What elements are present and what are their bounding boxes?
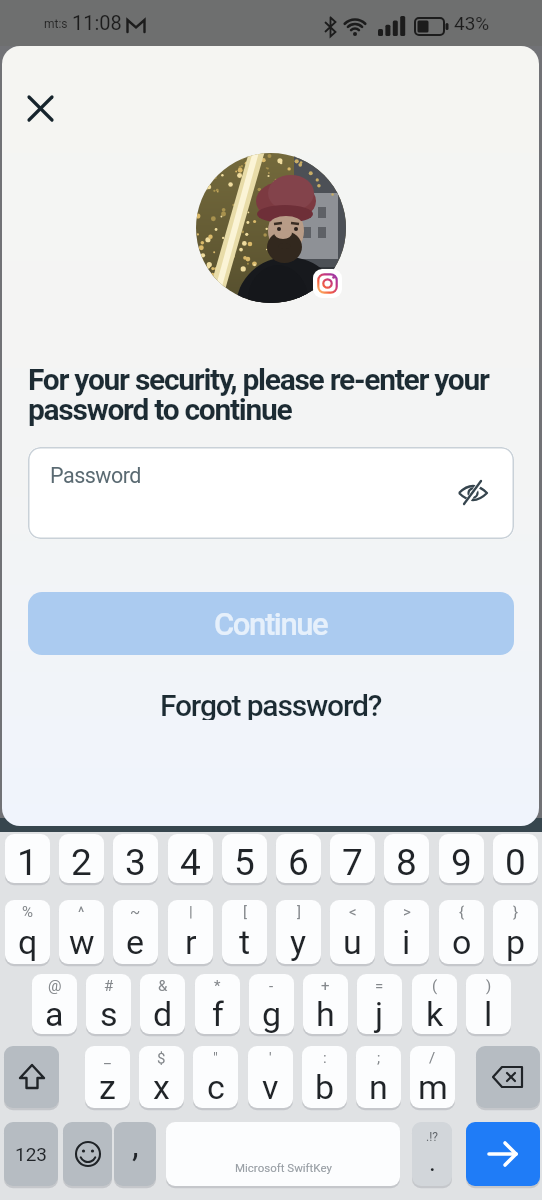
staticText: 9 — [451, 841, 472, 883]
button[interactable]: / — [410, 1046, 455, 1108]
staticText: ; — [377, 1049, 381, 1067]
staticText: e — [126, 922, 145, 962]
button[interactable]: $ — [139, 1046, 184, 1108]
staticText: * — [214, 977, 221, 995]
staticText: - — [269, 977, 274, 995]
button[interactable]: @ — [32, 974, 77, 1034]
button[interactable]: 5 — [222, 834, 267, 883]
staticText: % — [22, 903, 33, 921]
staticText: z — [99, 1067, 116, 1107]
button[interactable]: ' — [248, 1046, 293, 1108]
button[interactable]: : — [302, 1046, 347, 1108]
staticText: 7 — [342, 841, 363, 883]
button[interactable]: 6 — [276, 834, 321, 883]
button[interactable]: ] — [276, 900, 321, 964]
button[interactable]: 1 — [5, 834, 50, 883]
staticText: ) — [486, 977, 492, 995]
button[interactable]: ) — [466, 974, 511, 1034]
button[interactable] — [63, 1122, 112, 1186]
staticText: c — [207, 1067, 225, 1107]
button[interactable]: + — [303, 974, 348, 1034]
button[interactable]: { — [439, 900, 484, 964]
staticText: } — [513, 903, 519, 921]
staticText: 11:08 — [72, 11, 122, 34]
button[interactable]: .!? — [412, 1122, 452, 1186]
button[interactable] — [466, 1122, 540, 1186]
button[interactable]: Microsoft SwiftKey — [166, 1122, 400, 1186]
staticText: 4 — [180, 841, 201, 883]
button[interactable]: 4 — [168, 834, 213, 883]
staticText: l — [484, 994, 493, 1034]
button[interactable] — [22, 90, 59, 127]
staticText: q — [18, 922, 38, 962]
staticText: y — [290, 922, 307, 962]
button[interactable] — [450, 447, 514, 539]
button[interactable]: 123 — [4, 1122, 58, 1186]
staticText: ( — [432, 977, 438, 995]
staticText: i — [402, 922, 411, 962]
button[interactable]: ; — [356, 1046, 401, 1108]
staticText: 5 — [234, 841, 255, 883]
button[interactable]: " — [193, 1046, 238, 1108]
button[interactable]: , — [114, 1122, 156, 1186]
button[interactable]: ^ — [59, 900, 104, 964]
staticText: b — [315, 1067, 335, 1107]
button[interactable]: * — [195, 974, 240, 1034]
staticText: x — [153, 1067, 170, 1107]
staticText: o — [452, 922, 472, 962]
button[interactable]: - — [249, 974, 294, 1034]
staticText: t — [239, 922, 251, 962]
button[interactable]: Forgot password? — [0, 688, 542, 720]
button[interactable]: 0 — [493, 834, 538, 883]
button[interactable]: 7 — [330, 834, 375, 883]
staticText: p — [506, 922, 526, 962]
button[interactable]: | — [168, 900, 213, 964]
button[interactable]: ~ — [113, 900, 158, 964]
button[interactable]: Password — [28, 447, 514, 539]
staticText: ] — [297, 903, 301, 921]
staticText: Forgot password? — [160, 688, 382, 720]
staticText: u — [343, 922, 362, 962]
button[interactable]: % — [5, 900, 50, 964]
button[interactable] — [476, 1046, 540, 1108]
button[interactable]: 3 — [113, 834, 158, 883]
button[interactable]: < — [330, 900, 375, 964]
staticText: h — [316, 994, 335, 1034]
staticText: f — [212, 994, 224, 1034]
button[interactable] — [4, 1046, 59, 1108]
staticText: < — [349, 903, 357, 921]
button[interactable]: 9 — [439, 834, 484, 883]
staticText: m — [418, 1067, 448, 1107]
staticText: ~ — [130, 903, 141, 921]
staticText: [ — [243, 903, 247, 921]
button[interactable]: _ — [85, 1046, 130, 1108]
staticText: { — [459, 903, 465, 921]
button[interactable]: } — [493, 900, 538, 964]
staticText: @ — [48, 977, 62, 995]
button[interactable]: ( — [412, 974, 457, 1034]
button[interactable]: = — [357, 974, 402, 1034]
staticText: n — [369, 1067, 388, 1107]
button[interactable]: 8 — [384, 834, 429, 883]
staticText: s — [100, 994, 118, 1034]
button[interactable]: Continue — [28, 592, 514, 655]
staticText: r — [185, 922, 197, 962]
button[interactable]: # — [86, 974, 131, 1034]
staticText: # — [104, 977, 114, 995]
staticText: 3 — [125, 841, 146, 883]
staticText: 1 — [17, 841, 38, 883]
staticText: ^ — [78, 903, 85, 921]
staticText: v — [262, 1067, 279, 1107]
staticText: ' — [269, 1049, 272, 1067]
button[interactable]: [ — [222, 900, 267, 964]
staticText: : — [323, 1049, 327, 1067]
staticText: 6 — [288, 841, 309, 883]
button[interactable]: & — [140, 974, 185, 1034]
button[interactable]: 2 — [59, 834, 104, 883]
staticText: . — [429, 1147, 436, 1177]
staticText: _ — [104, 1049, 111, 1067]
button[interactable]: > — [384, 900, 429, 964]
staticText: , — [132, 1125, 139, 1165]
staticText: / — [429, 1049, 436, 1067]
staticText: & — [158, 977, 168, 995]
